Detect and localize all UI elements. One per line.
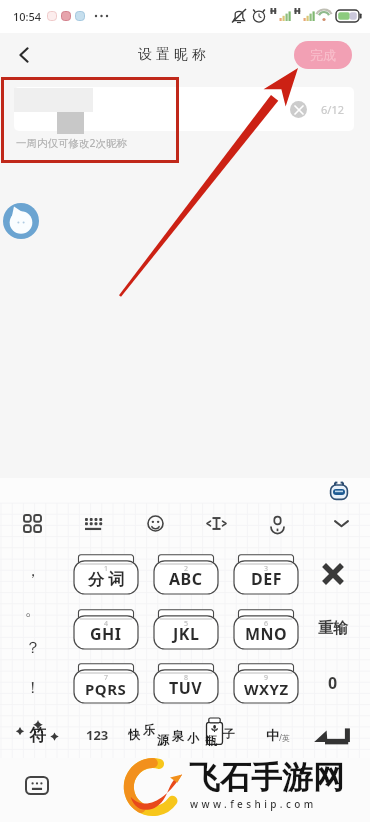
- button[interactable]: Clear text: [290, 101, 307, 118]
- button[interactable]: Assistant bot: [329, 481, 349, 501]
- staticText: 瓶: [205, 733, 217, 748]
- button[interactable]: 7: [74, 663, 138, 703]
- button[interactable]: Emoji: [139, 507, 171, 539]
- staticText: MNO: [245, 623, 288, 645]
- staticText: 重输: [318, 619, 348, 638]
- staticText: 123: [86, 726, 109, 744]
- staticText: 9: [264, 673, 269, 683]
- staticText: 符: [29, 725, 46, 746]
- staticText: www.feship.com: [190, 797, 317, 811]
- button[interactable]: Keyboard layout: [77, 507, 109, 539]
- button[interactable]: 1: [74, 554, 138, 594]
- button[interactable]: Keyboard: [22, 770, 52, 800]
- staticText: 8: [184, 673, 189, 683]
- staticText: 1: [104, 564, 109, 574]
- staticText: DEF: [251, 568, 282, 590]
- staticText: 小: [187, 730, 199, 745]
- button[interactable]: 3: [234, 554, 298, 594]
- button[interactable]: 123: [74, 719, 120, 751]
- button[interactable]: 符: [12, 719, 62, 751]
- button[interactable]: 9: [234, 663, 298, 703]
- button[interactable]: Hide keyboard: [325, 507, 357, 539]
- staticText: 中: [266, 727, 279, 743]
- button[interactable]: 5: [154, 609, 218, 649]
- staticText: 10:54: [13, 9, 42, 24]
- button[interactable]: Delete: [311, 558, 355, 590]
- staticText: GHI: [90, 623, 122, 645]
- staticText: 快: [128, 727, 140, 742]
- button[interactable]: Back: [4, 35, 44, 75]
- button[interactable]: 中: [256, 719, 300, 751]
- staticText: ！: [25, 678, 41, 698]
- staticText: 泉: [172, 728, 184, 743]
- button[interactable]: 6: [234, 609, 298, 649]
- staticText: ？: [25, 638, 41, 658]
- button[interactable]: 8: [154, 663, 218, 703]
- button[interactable]: Clear text: [14, 87, 354, 131]
- staticText: 完成: [310, 47, 336, 63]
- staticText: 0: [328, 672, 338, 694]
- staticText: 一周内仅可修改2次昵称: [16, 136, 128, 150]
- staticText: 4: [104, 619, 109, 629]
- staticText: TUV: [169, 677, 203, 699]
- staticText: 7: [104, 673, 109, 683]
- button[interactable]: ？: [18, 633, 48, 663]
- staticText: ABC: [169, 568, 203, 590]
- staticText: JKL: [173, 623, 200, 645]
- button[interactable]: 0: [311, 667, 355, 699]
- staticText: 6: [264, 619, 269, 629]
- staticText: 6/12: [321, 102, 344, 117]
- staticText: /英: [279, 732, 290, 743]
- staticText: 5: [184, 619, 189, 629]
- button[interactable]: Apps: [16, 507, 48, 539]
- button[interactable]: Enter: [308, 719, 358, 751]
- staticText: 源: [157, 732, 169, 747]
- staticText: ，: [25, 561, 41, 581]
- button[interactable]: Space: [126, 713, 250, 753]
- staticText: PQRS: [85, 679, 127, 699]
- staticText: 设置昵称: [136, 46, 208, 64]
- button[interactable]: 4: [74, 609, 138, 649]
- button[interactable]: Floating assistant: [3, 203, 39, 239]
- button[interactable]: Voice input: [261, 507, 293, 539]
- staticText: 。: [25, 600, 41, 620]
- staticText: WXYZ: [244, 679, 289, 699]
- staticText: 飞石手游网: [189, 758, 344, 797]
- button[interactable]: 。: [18, 595, 48, 625]
- staticText: 乐: [143, 722, 155, 737]
- button[interactable]: 完成: [294, 41, 352, 69]
- button[interactable]: Move cursor: [200, 507, 232, 539]
- staticText: 3: [264, 564, 269, 574]
- staticText: 子: [223, 726, 235, 741]
- button[interactable]: 2: [154, 554, 218, 594]
- button[interactable]: ，: [18, 556, 48, 586]
- button[interactable]: ！: [18, 673, 48, 703]
- staticText: 分词: [86, 570, 126, 590]
- staticText: 2: [184, 564, 189, 574]
- button[interactable]: 重输: [309, 612, 357, 644]
